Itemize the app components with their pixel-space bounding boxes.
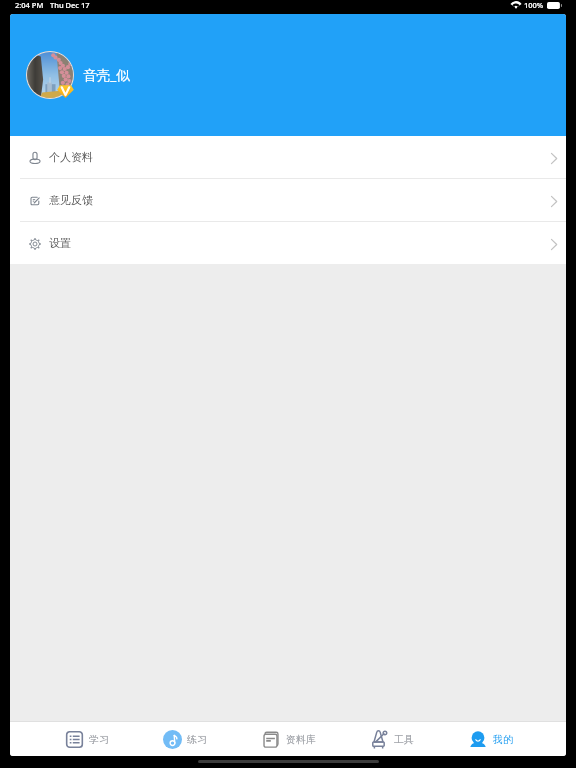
staticText: 资料库 <box>286 733 316 746</box>
staticText: 意见反馈 <box>49 193 93 207</box>
staticText: 设置 <box>49 236 71 250</box>
staticText: 学习 <box>89 733 109 746</box>
button[interactable]: 个人资料 <box>10 136 566 178</box>
button[interactable]: 资料库 <box>261 722 316 756</box>
staticText: 工具 <box>394 733 414 746</box>
staticText: 个人资料 <box>49 150 93 164</box>
staticText: 2:04 PM <box>15 0 44 10</box>
button[interactable]: 意见反馈 <box>10 179 566 221</box>
staticText: 音壳_似 <box>83 65 130 84</box>
staticText: 我的 <box>493 733 513 746</box>
staticText: Thu Dec 17 <box>50 0 90 10</box>
button[interactable]: 练习 <box>162 722 207 756</box>
button[interactable]: 我的 <box>468 722 513 756</box>
staticText: 练习 <box>187 733 207 746</box>
button[interactable]: 工具 <box>369 722 414 756</box>
button[interactable]: 设置 <box>10 222 566 264</box>
button[interactable]: 学习 <box>64 722 109 756</box>
staticText: 100% <box>524 0 544 10</box>
